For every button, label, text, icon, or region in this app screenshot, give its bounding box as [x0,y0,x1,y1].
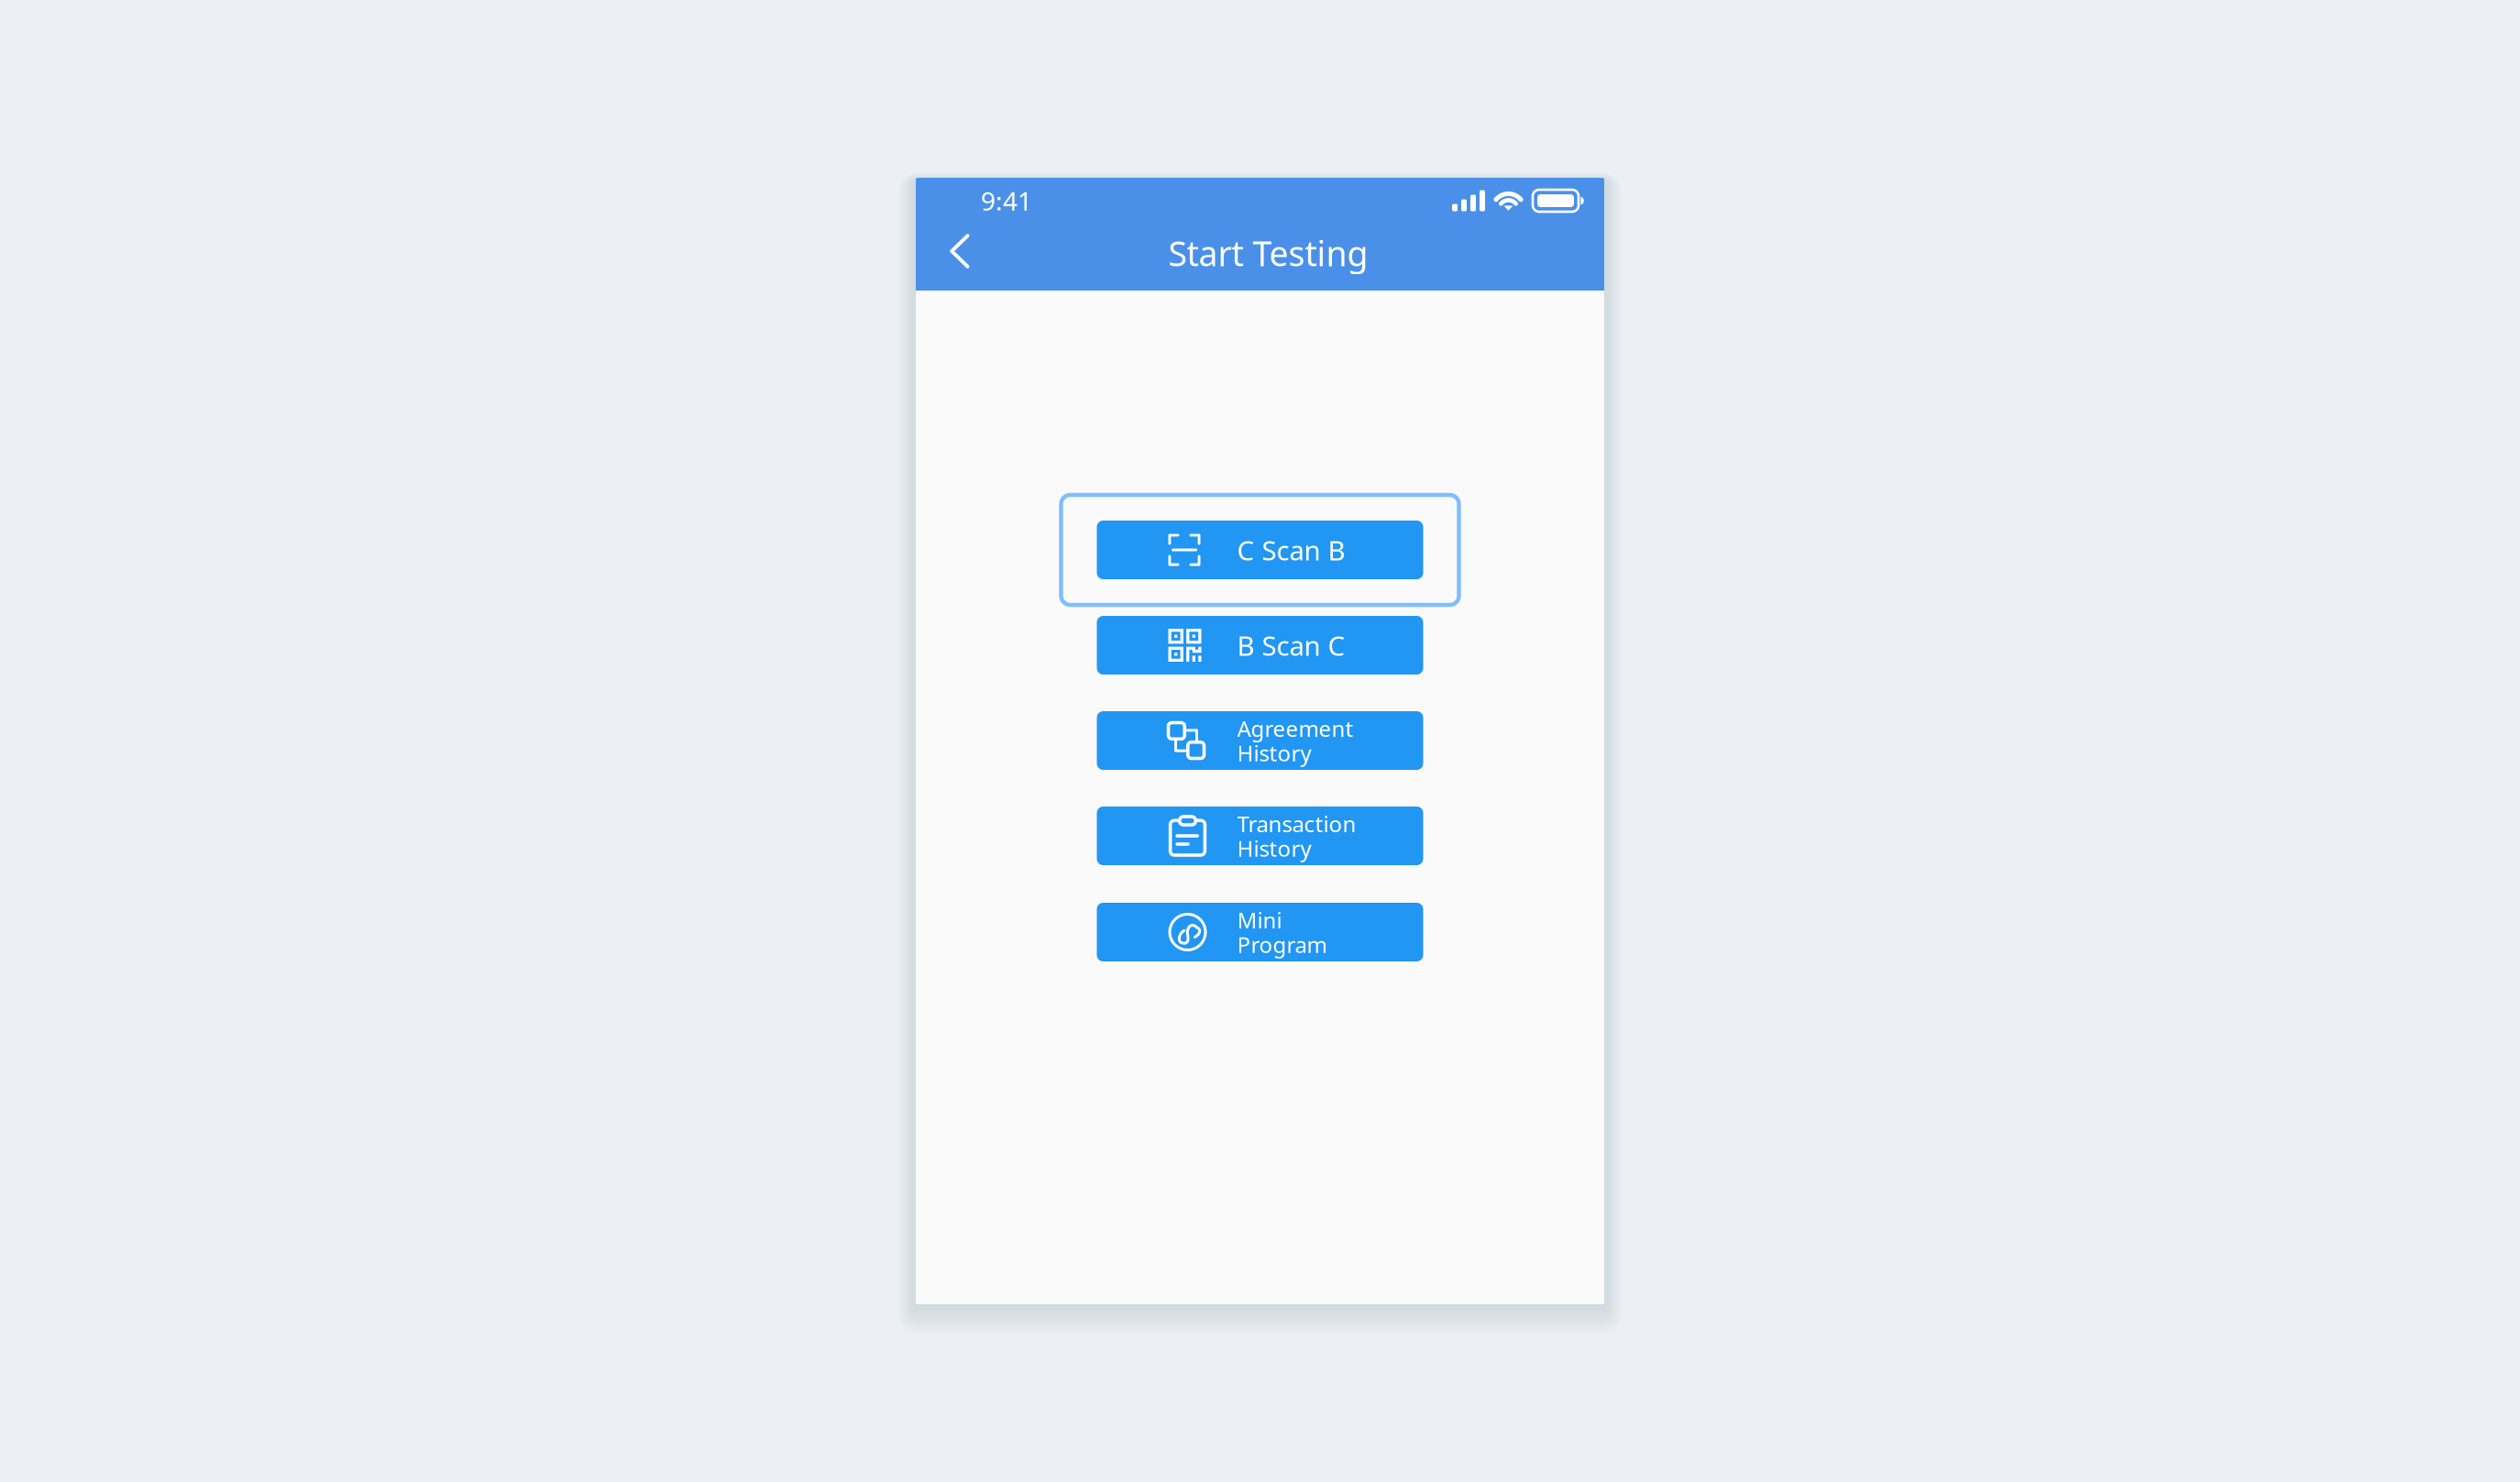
staticText: C Scan B [1237,532,1345,568]
staticText: History [1237,834,1311,863]
button[interactable]: Agreement [1097,711,1423,770]
button[interactable]: Back [937,221,983,281]
staticText: 9:41 [981,184,1032,218]
staticText: Transaction [1237,809,1356,838]
staticText: Mini [1237,905,1282,934]
staticText: B Scan C [1237,627,1345,663]
button[interactable]: B Scan C [1097,616,1423,675]
button[interactable]: Transaction [1097,807,1423,865]
staticText: History [1237,738,1311,767]
staticText: Agreement [1237,714,1354,743]
staticText: Start Testing [1168,230,1368,276]
button[interactable]: Mini [1097,903,1423,961]
staticText: Program [1237,930,1327,959]
button[interactable]: C Scan B [1097,521,1423,579]
